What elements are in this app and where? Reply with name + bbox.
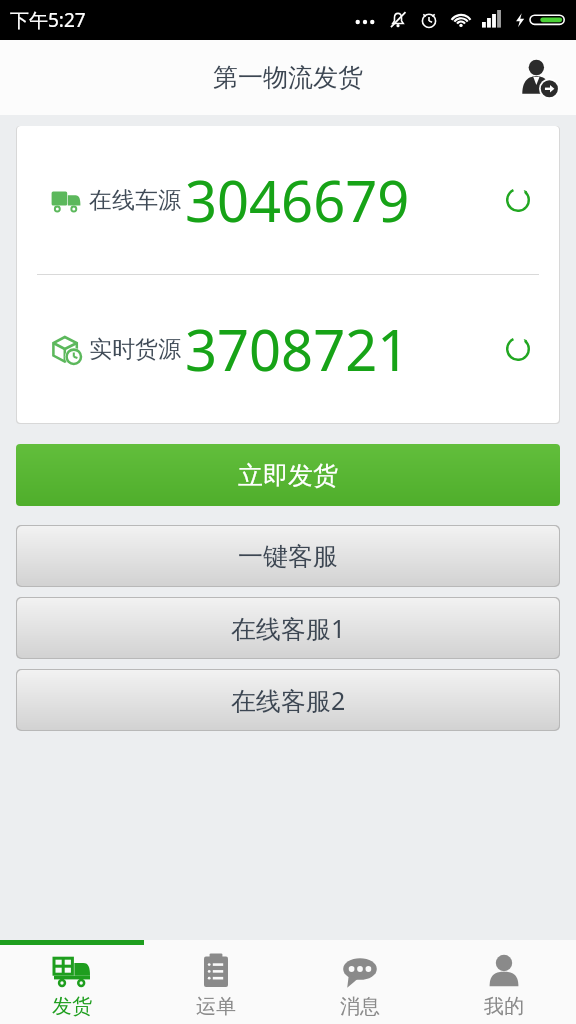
staticText: 发货: [52, 994, 92, 1019]
staticText: 运单: [196, 994, 236, 1019]
button[interactable]: 消息: [288, 945, 432, 1024]
button[interactable]: 运单: [144, 945, 288, 1024]
button[interactable]: 发货: [0, 945, 144, 1024]
staticText: 第一物流发货: [213, 62, 363, 93]
staticText: 在线客服1: [231, 611, 346, 645]
button[interactable]: 在线客服2: [17, 670, 559, 730]
staticText: 在线车源: [89, 186, 181, 215]
button[interactable]: 在线客服1: [17, 598, 559, 658]
button[interactable]: 立即发货: [16, 444, 560, 506]
button[interactable]: 一键客服: [17, 526, 559, 586]
staticText: 3046679: [185, 162, 410, 238]
staticText: 我的: [484, 994, 524, 1019]
staticText: 一键客服: [238, 541, 338, 572]
button[interactable]: 实时货源: [17, 275, 559, 423]
staticText: 3708721: [185, 311, 410, 387]
button[interactable]: 在线车源: [17, 126, 559, 274]
staticText: 在线客服2: [231, 683, 346, 717]
staticText: 下午5:27: [10, 7, 86, 33]
button[interactable]: Refresh 在线车源: [495, 177, 541, 223]
button[interactable]: 我的: [432, 945, 576, 1024]
staticText: 实时货源: [89, 335, 181, 364]
button[interactable]: Add contact: [510, 49, 568, 107]
staticText: 立即发货: [238, 460, 338, 491]
button[interactable]: Refresh 实时货源: [495, 326, 541, 372]
staticText: 消息: [340, 994, 380, 1019]
